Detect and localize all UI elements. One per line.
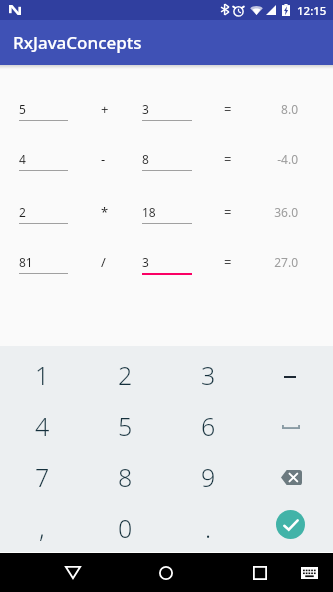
button[interactable]: 3	[167, 349, 250, 400]
button[interactable]: 81	[19, 254, 68, 274]
button[interactable]: Minus	[250, 349, 333, 400]
button[interactable]: Home	[142, 553, 190, 592]
staticText: *	[101, 203, 109, 221]
staticText: 8.0	[248, 101, 298, 117]
button[interactable]: Backspace	[250, 451, 333, 502]
staticText: 36.0	[248, 204, 298, 220]
button[interactable]: Space	[250, 400, 333, 451]
staticText: 3	[142, 254, 149, 270]
button[interactable]: Enter	[250, 502, 333, 553]
button[interactable]: 7	[0, 451, 84, 502]
staticText: 6	[201, 409, 216, 443]
staticText: =	[224, 100, 232, 118]
button[interactable]: 8	[84, 451, 167, 502]
button[interactable]: 5	[84, 400, 167, 451]
button[interactable]: 2	[84, 349, 167, 400]
staticText: =	[224, 150, 232, 168]
staticText: 27.0	[248, 254, 298, 270]
staticText: 18	[142, 204, 156, 220]
staticText: 8	[118, 460, 133, 494]
staticText: 12:15	[297, 3, 327, 19]
staticText: =	[224, 203, 232, 221]
staticText: 4	[35, 409, 50, 443]
staticText: -	[101, 150, 106, 168]
staticText: 4	[19, 151, 26, 167]
staticText: 3	[201, 358, 216, 392]
staticText: RxJavaConcepts	[13, 31, 142, 54]
staticText: 5	[118, 409, 133, 443]
staticText: 3	[142, 101, 149, 117]
staticText: ,	[39, 511, 45, 545]
button[interactable]: 5	[19, 101, 68, 121]
staticText: 81	[19, 254, 33, 270]
staticText: 2	[19, 204, 26, 220]
button[interactable]: 8	[142, 151, 192, 171]
staticText: =	[224, 253, 232, 271]
button[interactable]: 1	[0, 349, 84, 400]
staticText: 7	[35, 460, 50, 494]
staticText: 2	[118, 358, 133, 392]
button[interactable]: 9	[167, 451, 250, 502]
staticText: 9	[201, 460, 216, 494]
button[interactable]: Keyboard	[289, 553, 329, 592]
button[interactable]: Recents	[236, 553, 284, 592]
button[interactable]: ,	[0, 502, 84, 553]
button[interactable]: .	[167, 502, 250, 553]
button[interactable]: 4	[19, 151, 68, 171]
staticText: 8	[142, 151, 149, 167]
staticText: -4.0	[248, 151, 298, 167]
button[interactable]: 18	[142, 204, 192, 224]
staticText: 1	[35, 358, 50, 392]
button[interactable]: 2	[19, 204, 68, 224]
button[interactable]: Back	[49, 553, 97, 592]
button[interactable]: 0	[84, 502, 167, 553]
button[interactable]: 3	[142, 254, 192, 275]
button[interactable]: 6	[167, 400, 250, 451]
button[interactable]: 4	[0, 400, 84, 451]
staticText: +	[101, 100, 109, 118]
staticText: .	[205, 511, 212, 545]
staticText: /	[101, 253, 106, 271]
button[interactable]: 3	[142, 101, 192, 121]
staticText: 5	[19, 101, 26, 117]
staticText: 0	[118, 511, 133, 545]
